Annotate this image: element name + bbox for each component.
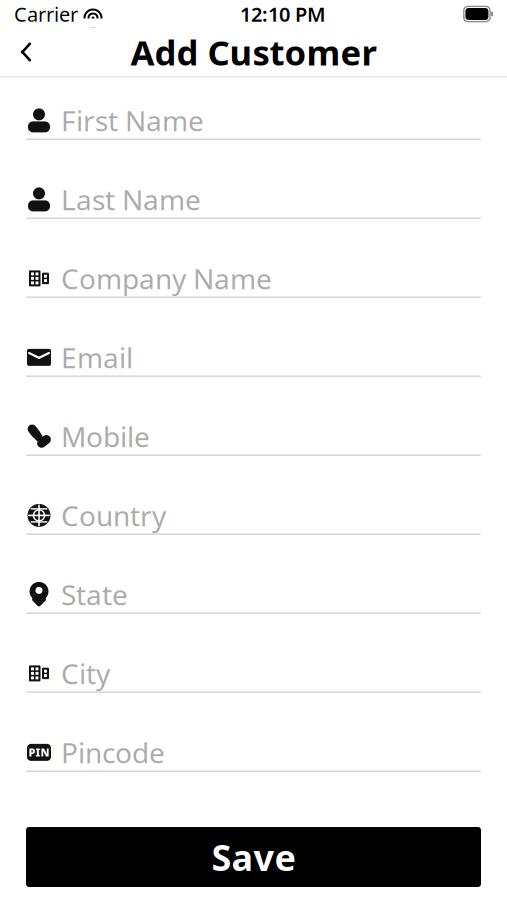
staticText: PIN: [28, 745, 49, 759]
staticText: Carrier: [14, 1, 78, 27]
staticText: 12:10 PM: [240, 1, 326, 27]
staticText: City: [61, 655, 110, 692]
staticText: Mobile: [61, 418, 150, 455]
staticText: Add Customer: [130, 29, 376, 75]
button[interactable]: Save: [26, 827, 481, 887]
staticText: Pincode: [61, 734, 165, 771]
staticText: Email: [61, 339, 133, 376]
staticText: Company Name: [61, 260, 272, 297]
staticText: Last Name: [61, 181, 201, 218]
staticText: Country: [61, 497, 166, 534]
staticText: State: [61, 576, 128, 613]
staticText: Save: [211, 833, 295, 881]
staticText: First Name: [61, 102, 204, 139]
button[interactable]: Back: [4, 30, 48, 74]
